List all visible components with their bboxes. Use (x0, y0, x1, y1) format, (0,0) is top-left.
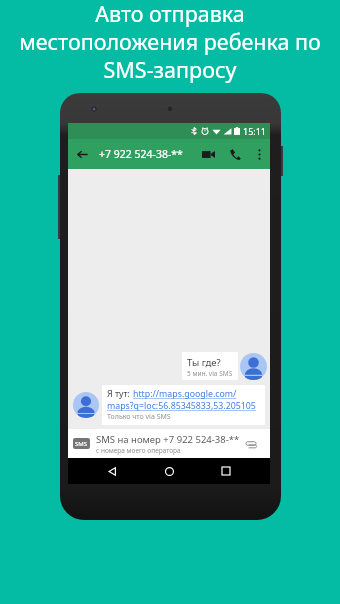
button[interactable]: Home (156, 458, 182, 484)
staticText: с номера моего оператора (96, 446, 181, 455)
button[interactable]: Attach (244, 437, 258, 451)
staticText: Только что via SMS (107, 412, 171, 422)
staticText: Я тут: (107, 388, 133, 400)
staticText: 15:11 (243, 125, 267, 137)
staticText: SMS (75, 440, 88, 448)
button[interactable]: Back (99, 458, 125, 484)
staticText: 5 мин. via SMS (187, 369, 233, 378)
button[interactable]: Recent apps (213, 458, 239, 484)
staticText: Ты где? (187, 356, 221, 369)
button[interactable]: Back (68, 139, 97, 169)
staticText: +7 922 524-38-** (99, 147, 183, 161)
button[interactable]: Call (222, 139, 248, 169)
staticText: SMS на номер +7 922 524-38-** (96, 433, 240, 446)
staticText: Авто отправка местоположения ребенка по … (6, 0, 334, 84)
button[interactable]: More options (248, 139, 270, 169)
staticText: http://maps.google.com/ (133, 388, 237, 400)
button[interactable]: Video call (195, 139, 222, 169)
staticText: maps?q=loc:56.85345833,53.205105 (107, 400, 256, 412)
